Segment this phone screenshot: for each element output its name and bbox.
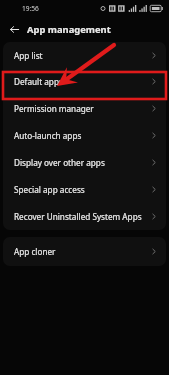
staticText: 19:56 bbox=[22, 4, 39, 13]
staticText: App management bbox=[27, 23, 111, 36]
button[interactable]: Auto-launch apps bbox=[3, 122, 166, 149]
button[interactable]: Display over other apps bbox=[3, 149, 166, 176]
button[interactable]: Special app access bbox=[3, 176, 166, 203]
staticText: Display over other apps bbox=[14, 157, 105, 168]
staticText: Auto-launch apps bbox=[14, 130, 82, 141]
button[interactable]: Recover Uninstalled System Apps bbox=[3, 203, 166, 230]
staticText: Special app access bbox=[14, 184, 85, 195]
staticText: Default apps bbox=[14, 76, 63, 87]
button[interactable]: App list bbox=[3, 42, 166, 68]
staticText: Permission manager bbox=[14, 103, 94, 114]
button[interactable]: Permission manager bbox=[3, 95, 166, 122]
button[interactable]: Back bbox=[7, 22, 22, 37]
staticText: App list bbox=[14, 50, 43, 61]
staticText: App cloner bbox=[14, 246, 56, 257]
staticText: Recover Uninstalled System Apps bbox=[14, 211, 142, 222]
button[interactable]: Default apps bbox=[3, 68, 166, 95]
button[interactable]: App cloner bbox=[3, 237, 166, 266]
